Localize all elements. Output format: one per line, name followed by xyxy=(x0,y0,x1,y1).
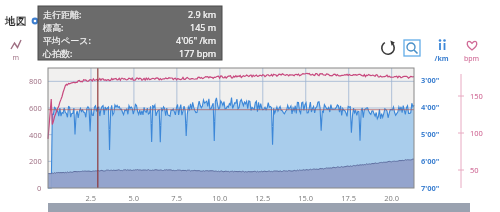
button[interactable]: 地図 Map xyxy=(5,12,35,30)
button[interactable]: Activity chart xyxy=(48,68,414,188)
button[interactable]: Scroll bar xyxy=(48,201,470,212)
button[interactable]: Zoom xyxy=(403,39,421,57)
button[interactable]: Reload xyxy=(380,40,397,57)
